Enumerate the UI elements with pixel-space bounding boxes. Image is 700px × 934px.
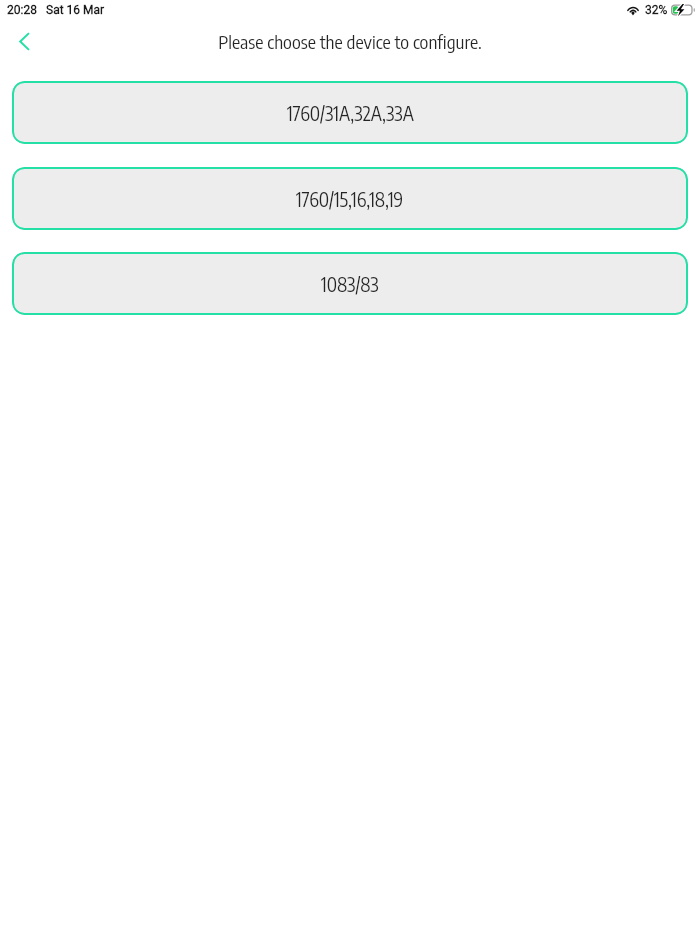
button[interactable]: Back [7, 24, 42, 59]
button[interactable]: 1760/31A,32A,33A [12, 81, 688, 144]
staticText: Sat 16 Mar [46, 3, 105, 17]
staticText: 32% [645, 3, 668, 17]
staticText: 1760/31A,32A,33A [287, 101, 414, 125]
button[interactable]: 1760/15,16,18,19 [12, 167, 688, 230]
staticText: 20:28 [7, 3, 37, 17]
staticText: Please choose the device to configure. [218, 30, 482, 53]
staticText: 1083/83 [321, 272, 379, 296]
button[interactable]: 1083/83 [12, 252, 688, 315]
staticText: 1760/15,16,18,19 [296, 187, 404, 211]
